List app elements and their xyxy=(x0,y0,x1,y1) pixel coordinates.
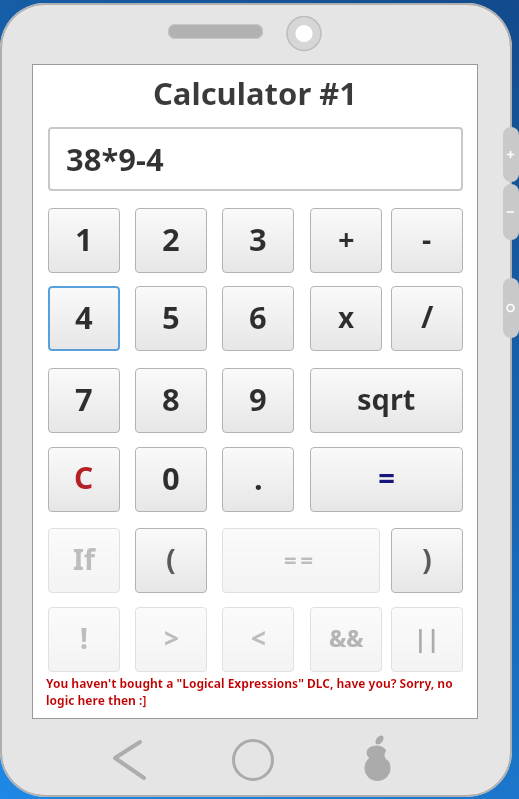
button[interactable]: > xyxy=(135,607,207,672)
button[interactable]: / xyxy=(391,286,463,351)
button[interactable]: 6 xyxy=(222,286,294,351)
staticText: sqrt xyxy=(357,379,416,418)
staticText: && xyxy=(329,622,364,653)
staticText: 2 xyxy=(162,218,180,260)
button[interactable]: If xyxy=(48,528,120,593)
button[interactable] xyxy=(100,735,155,790)
button[interactable]: 9 xyxy=(222,368,294,433)
button[interactable]: ) xyxy=(391,528,463,593)
staticText: C xyxy=(74,457,94,498)
button[interactable]: < xyxy=(222,607,294,672)
button[interactable] xyxy=(223,735,278,790)
staticText: = xyxy=(378,457,396,498)
staticText: If xyxy=(73,540,95,578)
staticText: < xyxy=(251,620,266,655)
button[interactable] xyxy=(503,127,519,182)
button[interactable]: 0 xyxy=(135,447,207,512)
button[interactable]: 5 xyxy=(135,286,207,351)
staticText: logic here then :] xyxy=(46,692,147,708)
staticText: 6 xyxy=(249,296,267,338)
staticText: == xyxy=(284,544,318,574)
staticText: ( xyxy=(166,539,176,578)
button[interactable]: - xyxy=(391,208,463,273)
staticText: 3 xyxy=(249,218,267,260)
button[interactable]: + xyxy=(310,208,382,273)
button[interactable]: 2 xyxy=(135,208,207,273)
button[interactable]: 1 xyxy=(48,208,120,273)
button[interactable]: ( xyxy=(135,528,207,593)
button[interactable]: x xyxy=(310,286,382,351)
button[interactable]: || xyxy=(391,607,463,672)
staticText: 7 xyxy=(75,378,93,420)
button[interactable] xyxy=(503,184,519,240)
button[interactable] xyxy=(352,735,407,790)
staticText: 4 xyxy=(75,296,93,338)
staticText: 1 xyxy=(75,218,93,260)
staticText: 8 xyxy=(162,378,180,420)
staticText: - xyxy=(422,219,432,258)
button[interactable]: == xyxy=(222,528,380,593)
staticText: 38*9-4 xyxy=(66,138,164,180)
button[interactable]: 8 xyxy=(135,368,207,433)
button[interactable]: C xyxy=(48,447,120,512)
button[interactable]: ! xyxy=(48,607,120,672)
staticText: / xyxy=(421,296,434,337)
button[interactable]: . xyxy=(222,447,294,512)
staticText: . xyxy=(254,457,263,499)
button[interactable]: 3 xyxy=(222,208,294,273)
button[interactable]: 38*9-4 xyxy=(48,127,463,191)
button[interactable] xyxy=(503,278,519,338)
staticText: + xyxy=(338,219,355,258)
staticText: 0 xyxy=(162,457,180,499)
staticText: x xyxy=(338,298,355,336)
staticText: ! xyxy=(80,619,88,657)
button[interactable]: 7 xyxy=(48,368,120,433)
staticText: Calculator #1 xyxy=(32,72,478,114)
button[interactable]: sqrt xyxy=(310,368,463,433)
staticText: You haven't bought a "Logical Expression… xyxy=(46,675,453,691)
button[interactable]: && xyxy=(310,607,382,672)
staticText: ) xyxy=(422,539,432,578)
staticText: 9 xyxy=(249,378,267,420)
staticText: 5 xyxy=(162,296,180,338)
button[interactable]: 4 xyxy=(48,286,120,351)
staticText: > xyxy=(164,620,179,655)
button[interactable]: = xyxy=(310,447,463,512)
staticText: || xyxy=(414,622,440,653)
